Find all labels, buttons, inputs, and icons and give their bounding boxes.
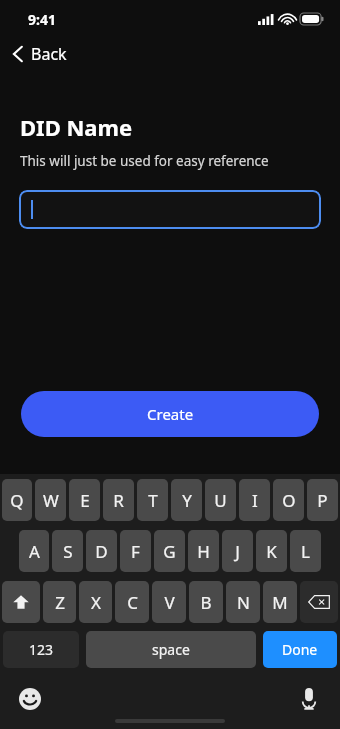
button[interactable]: F bbox=[120, 530, 151, 572]
button[interactable]: Z bbox=[43, 581, 76, 623]
staticText: H bbox=[197, 540, 210, 563]
staticText: C bbox=[127, 591, 138, 614]
button[interactable]: O bbox=[273, 479, 304, 521]
staticText: T bbox=[148, 489, 158, 512]
staticText: Create bbox=[147, 404, 194, 424]
staticText: This will just be used for easy referenc… bbox=[20, 152, 269, 170]
staticText: J bbox=[235, 540, 240, 563]
staticText: X bbox=[91, 591, 101, 614]
staticText: I bbox=[252, 489, 258, 512]
staticText: Y bbox=[182, 489, 192, 512]
button[interactable]: G bbox=[154, 530, 185, 572]
button[interactable]: Backspace bbox=[300, 581, 338, 623]
button[interactable]: 123 bbox=[3, 631, 79, 668]
staticText: Back bbox=[31, 43, 67, 65]
button[interactable]: E bbox=[69, 479, 100, 521]
staticText: G bbox=[163, 540, 176, 563]
button[interactable]: T bbox=[137, 479, 168, 521]
button[interactable]: K bbox=[256, 530, 287, 572]
button[interactable]: J bbox=[222, 530, 253, 572]
staticText: R bbox=[113, 489, 124, 512]
button[interactable]: N bbox=[226, 581, 260, 623]
button[interactable]: space bbox=[86, 631, 256, 668]
staticText: 9:41 bbox=[28, 10, 56, 29]
button[interactable]: U bbox=[205, 479, 236, 521]
button[interactable]: M bbox=[263, 581, 297, 623]
button[interactable]: Emoji bbox=[13, 682, 47, 716]
button[interactable]: V bbox=[152, 581, 186, 623]
button[interactable]: I bbox=[239, 479, 270, 521]
button[interactable]: P bbox=[307, 479, 338, 521]
staticText: 123 bbox=[29, 640, 54, 659]
staticText: DID Name bbox=[20, 112, 133, 142]
button[interactable]: Done bbox=[263, 631, 337, 668]
button[interactable]: D bbox=[86, 530, 117, 572]
button[interactable]: C bbox=[115, 581, 149, 623]
button[interactable]: B bbox=[189, 581, 223, 623]
staticText: N bbox=[237, 591, 250, 614]
staticText: E bbox=[80, 489, 90, 512]
staticText: Q bbox=[10, 489, 24, 512]
button[interactable]: A bbox=[19, 530, 49, 572]
button[interactable]: Y bbox=[171, 479, 202, 521]
staticText: L bbox=[301, 540, 310, 563]
staticText: V bbox=[164, 591, 175, 614]
button[interactable]: Voice input bbox=[292, 682, 326, 716]
button[interactable]: S bbox=[52, 530, 83, 572]
staticText: P bbox=[317, 489, 328, 512]
button[interactable]: Shift bbox=[2, 581, 40, 623]
button[interactable]: R bbox=[103, 479, 134, 521]
staticText: B bbox=[200, 591, 212, 614]
staticText: Done bbox=[282, 640, 318, 659]
staticText: O bbox=[282, 489, 296, 512]
staticText: A bbox=[29, 540, 40, 563]
button[interactable]: H bbox=[188, 530, 219, 572]
button[interactable] bbox=[19, 190, 321, 229]
staticText: Z bbox=[55, 591, 65, 614]
button[interactable]: Q bbox=[2, 479, 32, 521]
button[interactable]: L bbox=[290, 530, 321, 572]
staticText: M bbox=[272, 591, 288, 614]
staticText: D bbox=[95, 540, 108, 563]
staticText: W bbox=[43, 489, 59, 512]
staticText: K bbox=[266, 540, 277, 563]
button[interactable]: Back bbox=[8, 38, 71, 70]
button[interactable]: W bbox=[35, 479, 66, 521]
staticText: U bbox=[214, 489, 227, 512]
staticText: S bbox=[63, 540, 73, 563]
button[interactable]: X bbox=[79, 581, 112, 623]
staticText: F bbox=[131, 540, 140, 563]
button[interactable]: Create bbox=[21, 391, 319, 437]
staticText: space bbox=[152, 640, 190, 659]
